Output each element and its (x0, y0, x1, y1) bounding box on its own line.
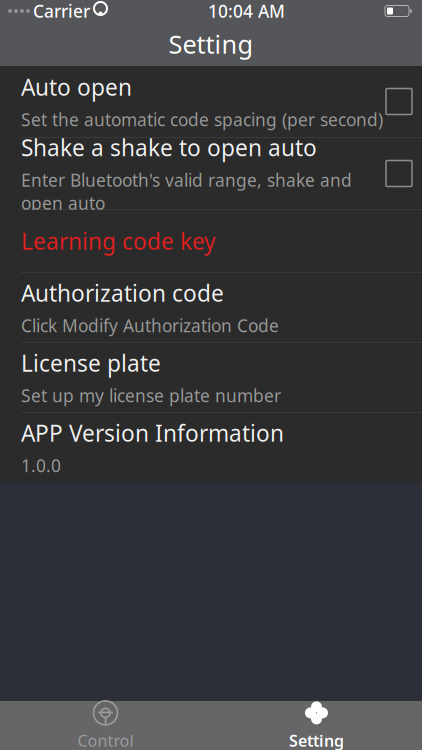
staticText: 10:04 AM (208, 0, 285, 22)
staticText: License plate (21, 348, 161, 378)
staticText: Auto open (21, 72, 132, 102)
button[interactable]: Control (0, 701, 211, 750)
button[interactable]: License plate (0, 343, 422, 412)
staticText: Setting (168, 27, 253, 61)
button[interactable]: APP Version Information (0, 413, 422, 482)
button[interactable]: Setting (211, 701, 422, 750)
button[interactable]: Learning code key (0, 210, 422, 272)
staticText: Enter Bluetooth's valid range, shake and… (21, 168, 352, 214)
staticText: APP Version Information (21, 418, 284, 448)
staticText: 1.0.0 (21, 454, 61, 477)
staticText: Carrier (33, 0, 90, 22)
staticText: Click Modify Authorization Code (21, 314, 279, 337)
staticText: Setting (289, 730, 344, 750)
staticText: Set up my license plate number (21, 384, 281, 407)
button[interactable]: Shake a shake to open auto (0, 138, 422, 209)
staticText: Shake a shake to open auto (21, 132, 317, 162)
staticText: Set the automatic code spacing (per seco… (21, 108, 383, 131)
staticText: Control (77, 730, 133, 750)
staticText: Authorization code (21, 278, 224, 308)
staticText: Learning code key (21, 226, 216, 256)
button[interactable]: Auto open (0, 66, 422, 137)
button[interactable]: Authorization code (0, 273, 422, 342)
